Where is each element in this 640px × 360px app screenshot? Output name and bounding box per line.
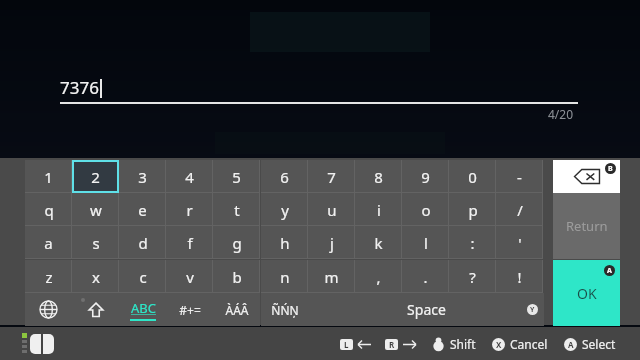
button[interactable]: Return [553,193,620,259]
button[interactable]: i [355,193,402,226]
button[interactable]: 4 [166,160,213,193]
staticText: A [568,339,574,350]
button[interactable]: ' [496,226,543,259]
staticText: m [324,267,339,287]
button[interactable]: 3 [119,160,166,193]
staticText: 6 [280,167,289,187]
staticText: ABC [131,299,156,317]
staticText: Shift [450,336,476,352]
staticText: ! [517,267,522,287]
button[interactable]: q [25,193,72,226]
staticText: ' [518,233,522,253]
staticText: v [186,267,194,287]
staticText: Space [407,300,446,319]
button[interactable]: h [261,226,308,259]
button[interactable]: / [496,193,543,226]
staticText: 7376 [60,76,99,99]
button[interactable]: 7376 [60,76,578,104]
button[interactable]: 7 [308,160,355,193]
button[interactable]: ABC [119,293,166,326]
button[interactable]: Shift [432,336,476,352]
button[interactable]: ÑŃŅ [261,293,308,326]
button[interactable]: 5 [213,160,260,193]
staticText: r [186,200,193,220]
button[interactable]: X [492,336,548,352]
button[interactable]: r [166,193,213,226]
staticText: , [376,267,381,287]
button[interactable]: l [402,226,449,259]
staticText: g [232,233,242,253]
staticText: Cancel [510,336,548,352]
staticText: p [468,200,478,220]
button[interactable]: Space [308,293,544,326]
button[interactable]: d [119,226,166,259]
staticText: i [377,200,381,220]
button[interactable]: R [385,339,416,350]
button[interactable]: z [25,260,72,293]
button[interactable]: u [308,193,355,226]
button[interactable]: g [213,226,260,259]
button[interactable]: 8 [355,160,402,193]
button[interactable]: ÀÁÂ [213,293,260,326]
staticText: w [90,200,102,220]
staticText: j [330,233,334,253]
staticText: B [608,164,613,174]
button[interactable]: e [119,193,166,226]
button[interactable]: 6 [261,160,308,193]
button[interactable]: #+= [166,293,213,326]
button[interactable]: n [261,260,308,293]
button[interactable]: 1 [25,160,72,193]
button[interactable]: f [166,226,213,259]
button[interactable]: m [308,260,355,293]
button[interactable]: c [119,260,166,293]
button[interactable]: Backspace [553,160,620,193]
button[interactable]: A [564,336,616,352]
button[interactable]: k [355,226,402,259]
button[interactable]: 2 [72,160,119,193]
staticText: 4/20 [548,106,574,122]
staticText: c [139,267,147,287]
staticText: x [92,267,100,287]
button[interactable]: y [261,193,308,226]
staticText: t [234,200,240,220]
button[interactable]: 9 [402,160,449,193]
staticText: s [92,233,100,253]
button[interactable]: s [72,226,119,259]
staticText: Select [582,336,616,352]
button[interactable]: Language [25,293,72,326]
button[interactable]: a [25,226,72,259]
staticText: R [389,339,395,350]
button[interactable]: L [340,339,371,350]
staticText: 2 [91,167,100,187]
staticText: q [44,200,54,220]
staticText: Return [566,217,608,235]
button[interactable]: OK [553,260,620,326]
button[interactable]: : [449,226,496,259]
button[interactable]: t [213,193,260,226]
staticText: f [187,233,193,253]
button[interactable]: j [308,226,355,259]
button[interactable]: ! [496,260,543,293]
staticText: . [423,267,428,287]
button[interactable]: Shift [72,293,119,326]
staticText: h [280,233,290,253]
button[interactable]: 0 [449,160,496,193]
button[interactable]: p [449,193,496,226]
staticText: / [517,200,523,220]
button[interactable]: . [402,260,449,293]
button[interactable]: w [72,193,119,226]
button[interactable]: v [166,260,213,293]
staticText: Y [530,305,535,315]
button[interactable]: ? [449,260,496,293]
button[interactable]: x [72,260,119,293]
staticText: z [45,267,53,287]
staticText: a [44,233,53,253]
button[interactable]: o [402,193,449,226]
staticText: - [517,167,522,187]
staticText: d [138,233,148,253]
button[interactable]: , [355,260,402,293]
staticText: u [327,200,337,220]
staticText: k [374,233,383,253]
button[interactable]: b [213,260,260,293]
button[interactable]: - [496,160,543,193]
